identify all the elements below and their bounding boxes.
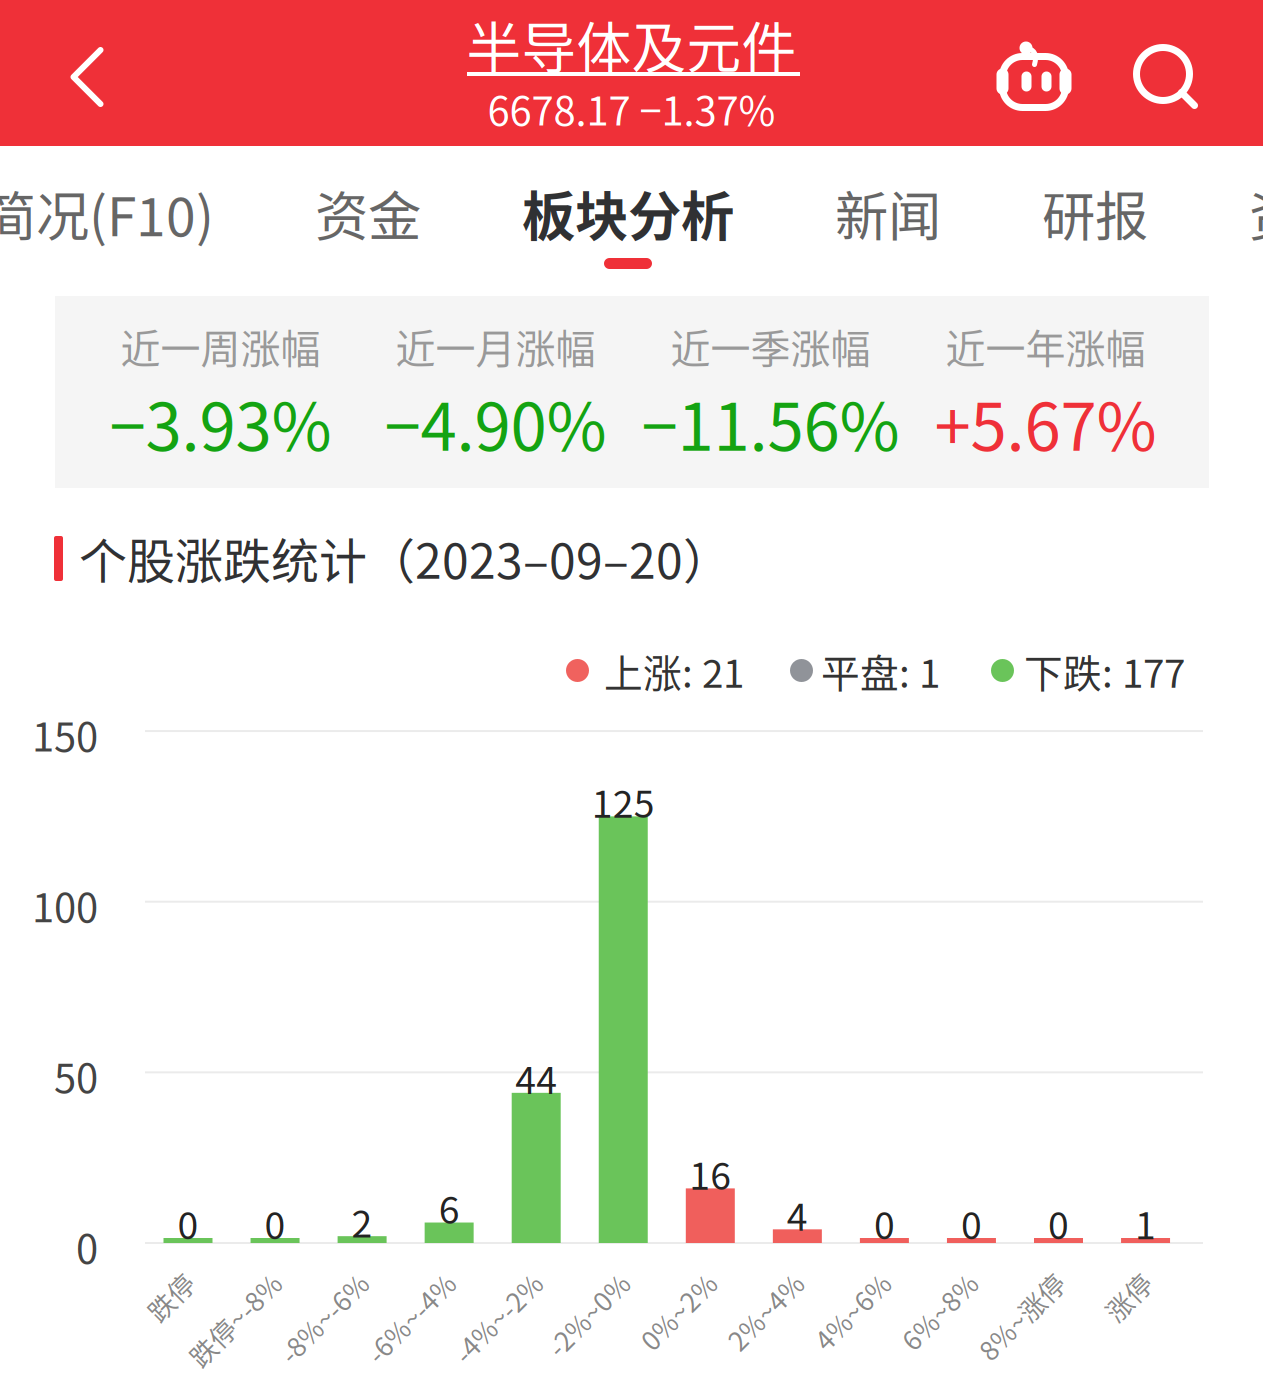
staticText: 上涨: 21 <box>604 643 744 699</box>
staticText: −4.90% <box>384 375 606 470</box>
staticText: 16 <box>689 1146 731 1200</box>
staticText: 简况(F10) <box>0 174 214 252</box>
staticText: 0 <box>265 1196 286 1250</box>
staticText: 4%~6% <box>780 1263 875 1301</box>
staticText: -8%~-6% <box>240 1263 353 1301</box>
staticText: 2%~4% <box>693 1263 788 1301</box>
staticText: 资料 <box>1249 174 1263 252</box>
staticText: 下跌: 177 <box>1024 643 1185 699</box>
staticText: −3.93% <box>109 375 331 470</box>
staticText: 近一周涨幅 <box>120 317 320 375</box>
staticText: -4%~-2% <box>414 1263 527 1301</box>
staticText: 125 <box>592 774 655 828</box>
staticText: 0 <box>76 1217 98 1275</box>
button[interactable]: 搜索 <box>1110 0 1222 146</box>
staticText: 150 <box>32 705 98 763</box>
staticText: 0 <box>874 1196 895 1250</box>
staticText: -2%~0% <box>510 1263 614 1301</box>
staticText: +5.67% <box>934 375 1156 470</box>
staticText: 半导体及元件 <box>466 4 796 84</box>
staticText: 100 <box>32 876 98 934</box>
staticText: 8%~涨停 <box>940 1263 1049 1301</box>
staticText: 1 <box>1135 1196 1156 1250</box>
staticText: 个股涨跌统计（2023–09–20） <box>79 523 731 592</box>
staticText: 研报 <box>1042 174 1148 252</box>
staticText: 0 <box>177 1196 198 1250</box>
button[interactable]: 板块分析 <box>522 141 734 285</box>
staticText: -6%~-4% <box>327 1263 440 1301</box>
staticText: 2 <box>352 1194 373 1248</box>
staticText: 50 <box>54 1046 98 1104</box>
staticText: 近一季涨幅 <box>670 317 870 375</box>
staticText: 涨停 <box>1082 1263 1136 1301</box>
staticText: 0%~2% <box>606 1263 701 1301</box>
button[interactable]: 资料 <box>1249 141 1263 285</box>
staticText: 近一月涨幅 <box>395 317 595 375</box>
button[interactable]: 研报 <box>1042 141 1148 285</box>
staticText: 4 <box>787 1187 808 1241</box>
staticText: 跌停 <box>125 1263 179 1301</box>
staticText: 新闻 <box>835 174 941 252</box>
staticText: 6%~8% <box>867 1263 962 1301</box>
staticText: 平盘: 1 <box>821 643 940 699</box>
staticText: 资金 <box>315 174 421 252</box>
staticText: 跌停~-8% <box>148 1263 266 1301</box>
button[interactable]: 资金 <box>315 141 421 285</box>
staticText: 0 <box>1048 1196 1069 1250</box>
staticText: 44 <box>515 1051 557 1105</box>
button[interactable]: 简况(F10) <box>0 141 214 285</box>
staticText: 0 <box>961 1196 982 1250</box>
button[interactable]: 返回 <box>22 4 152 150</box>
staticText: −11.56% <box>641 375 899 470</box>
staticText: 6 <box>439 1180 460 1235</box>
staticText: 6678.17 −1.37% <box>487 79 775 137</box>
staticText: 近一年涨幅 <box>945 317 1145 375</box>
staticText: 板块分析 <box>522 174 734 252</box>
button[interactable]: 智能助手 <box>978 0 1090 146</box>
button[interactable]: 新闻 <box>835 141 941 285</box>
